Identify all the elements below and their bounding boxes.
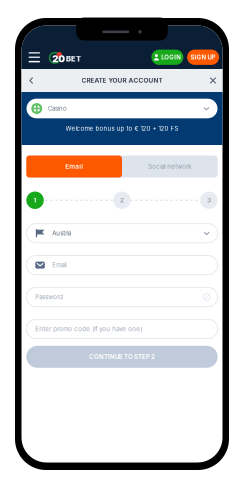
button[interactable]: SIGN UP <box>187 50 219 65</box>
staticText: BET <box>66 54 81 63</box>
staticText: LOGIN <box>161 54 181 61</box>
button[interactable]: Password <box>26 287 218 307</box>
staticText: 2 <box>120 196 124 204</box>
button[interactable]: Casino <box>26 99 217 118</box>
staticText: CREATE YOUR ACCOUNT <box>81 77 162 84</box>
button[interactable]: Email <box>26 155 122 177</box>
button[interactable]: Enter promo code (if you have one) <box>26 319 218 338</box>
button[interactable]: Austria <box>26 224 218 243</box>
staticText: SIGN UP <box>191 54 216 61</box>
staticText: Austria <box>52 229 71 237</box>
staticText: Email <box>65 163 83 170</box>
button[interactable]: Email <box>26 255 218 275</box>
button[interactable]: Menu <box>26 49 42 65</box>
staticText: 3 <box>207 196 211 204</box>
staticText: Email <box>52 261 66 269</box>
staticText: Password <box>35 293 63 301</box>
button[interactable]: Back <box>26 75 36 85</box>
staticText: Enter promo code (if you have one) <box>35 325 142 333</box>
button[interactable]: Close <box>208 75 218 85</box>
staticText: Social network <box>148 163 191 170</box>
button[interactable]: LOGIN <box>151 50 183 65</box>
staticText: Welcome bonus up to € 120 + 120 FS <box>65 125 178 132</box>
staticText: CONTINUE TO STEP 2 <box>89 353 155 360</box>
staticText: 20 <box>52 53 65 65</box>
staticText: 1 <box>33 196 36 204</box>
button[interactable]: CONTINUE TO STEP 2 <box>26 346 218 368</box>
staticText: Casino <box>48 105 67 112</box>
button[interactable]: Social network <box>122 155 218 177</box>
